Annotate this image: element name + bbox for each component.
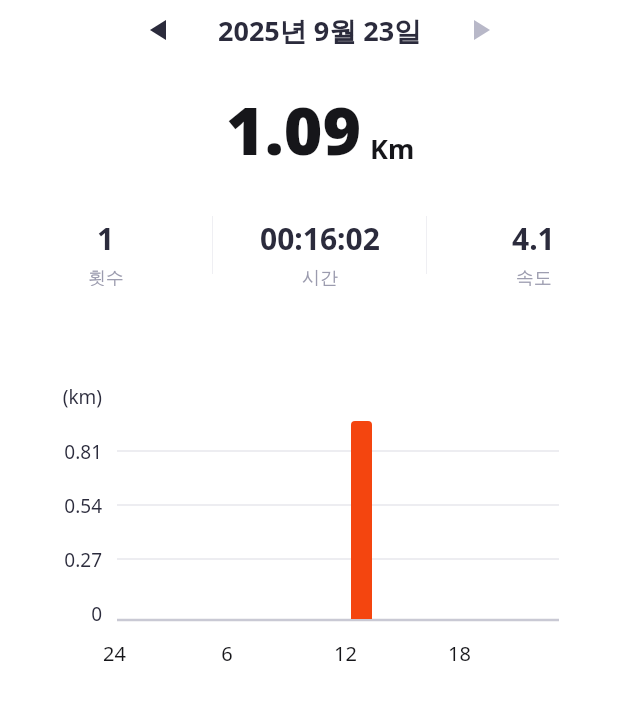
staticText: 1	[97, 218, 115, 259]
staticText: 6	[221, 640, 233, 667]
button[interactable]: 00:16:02	[213, 216, 426, 286]
staticText: 횟수	[88, 267, 124, 286]
staticText: 0.54	[64, 493, 102, 519]
staticText: Km	[370, 130, 415, 167]
staticText: 0.27	[64, 547, 102, 573]
staticText: 2025년 9월 23일	[218, 12, 422, 49]
staticText: 18	[448, 640, 471, 667]
button[interactable]: Distance bar at 12 o'clock	[351, 421, 372, 619]
button[interactable]: 1	[0, 216, 212, 286]
staticText: 시간	[302, 267, 338, 286]
staticText: 0.81	[64, 439, 102, 465]
staticText: 속도	[516, 267, 552, 286]
staticText: 1.09	[226, 84, 362, 174]
staticText: 00:16:02	[260, 218, 380, 259]
button[interactable]: Next day	[460, 8, 504, 52]
button[interactable]: 2025년 9월 23일	[218, 12, 422, 49]
staticText: 24	[103, 640, 126, 667]
staticText: 4.1	[512, 218, 555, 259]
staticText: 0	[91, 601, 102, 627]
button[interactable]: 4.1	[427, 216, 640, 286]
staticText: (km)	[62, 384, 102, 410]
button[interactable]: Previous day	[136, 8, 180, 52]
staticText: 12	[334, 640, 357, 667]
